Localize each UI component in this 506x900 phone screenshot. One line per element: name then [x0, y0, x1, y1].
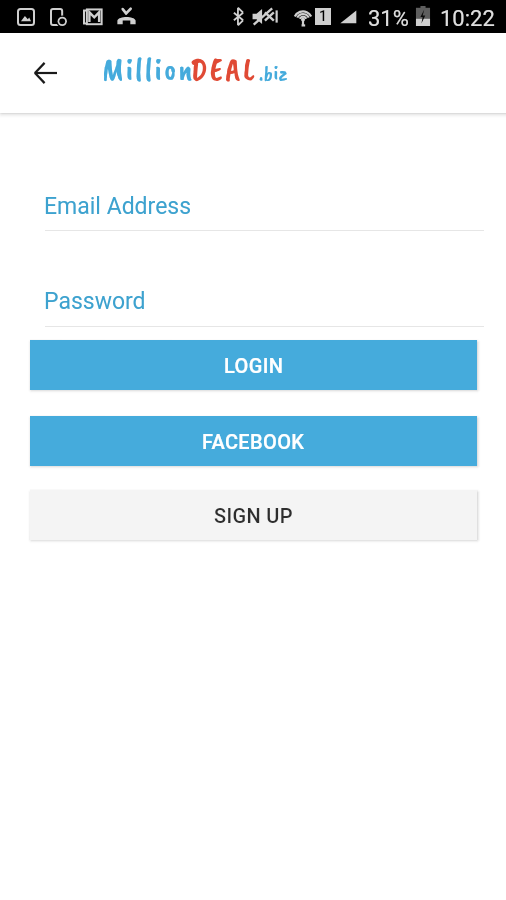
button[interactable]: MillionDEAL.biz: [100, 45, 295, 89]
staticText: 10:22: [440, 6, 495, 32]
staticText: SIGN UP: [214, 504, 293, 527]
button[interactable]: SIGN UP: [30, 490, 477, 540]
button[interactable]: LOGIN: [30, 340, 477, 390]
staticText: 31%: [368, 6, 409, 32]
staticText: 1: [319, 8, 327, 24]
staticText: LOGIN: [224, 354, 284, 377]
button[interactable]: Back: [22, 50, 68, 96]
staticText: FACEBOOK: [202, 430, 305, 453]
staticText: DEAL: [190, 49, 258, 89]
staticText: .biz: [259, 60, 289, 86]
staticText: Email Address: [44, 193, 192, 220]
button[interactable]: Email Address: [30, 175, 484, 227]
staticText: Million: [102, 49, 195, 89]
staticText: Password: [44, 288, 146, 315]
button[interactable]: Password: [30, 270, 484, 322]
button[interactable]: FACEBOOK: [30, 416, 477, 466]
